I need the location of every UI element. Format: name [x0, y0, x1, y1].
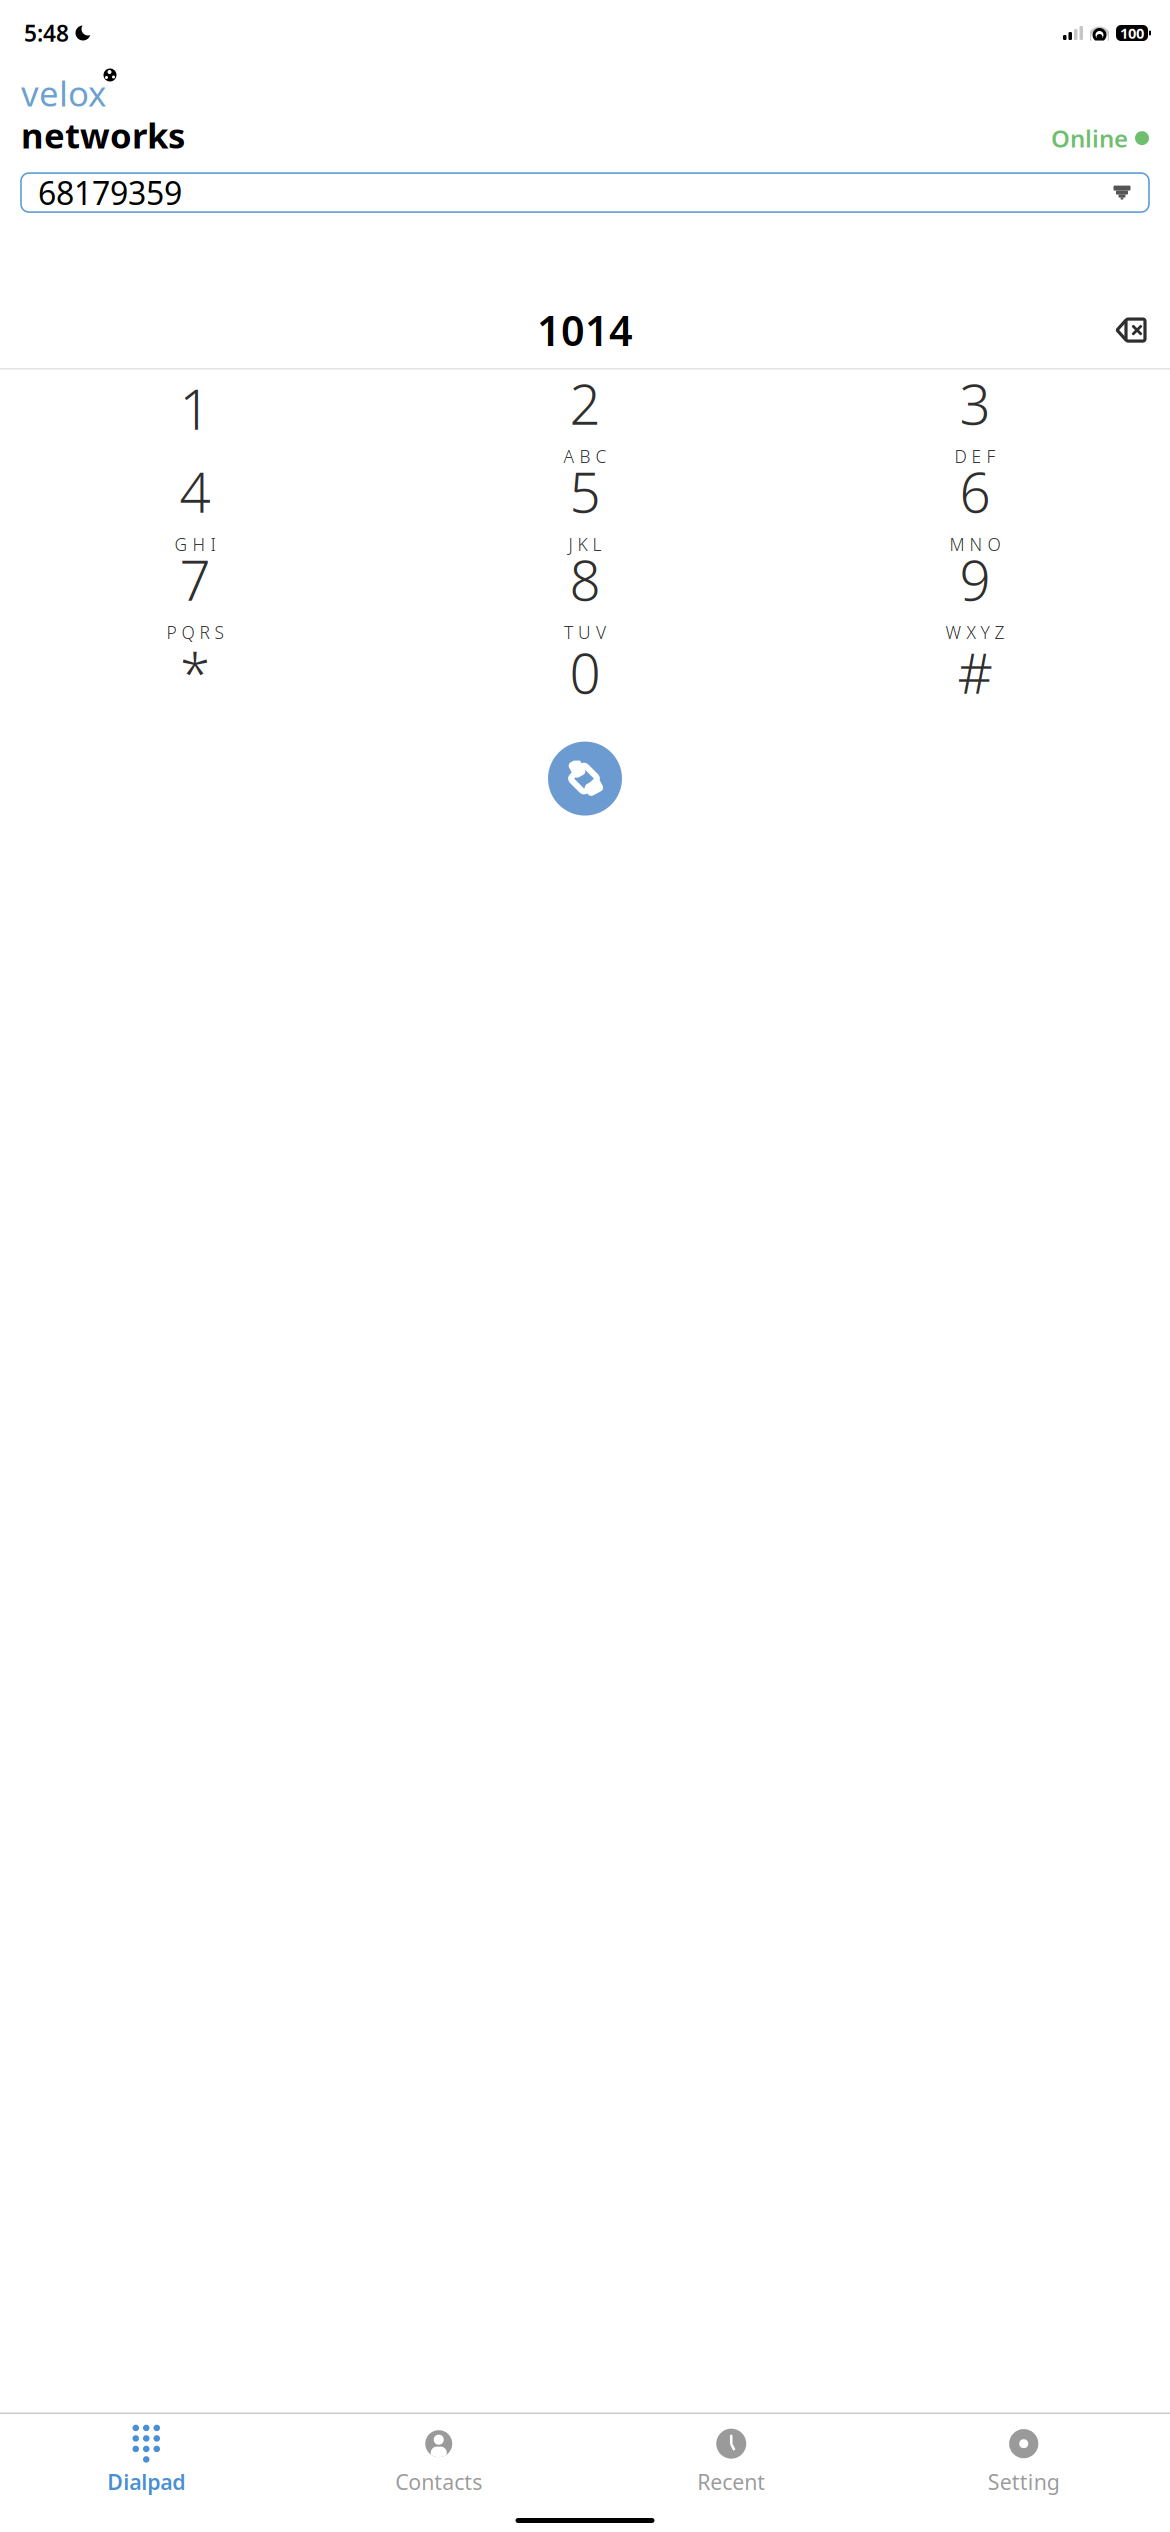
button[interactable]: 9	[780, 552, 1170, 640]
staticText: 68179359	[38, 171, 182, 214]
button[interactable]: 4	[0, 464, 390, 552]
button[interactable]: Setting	[877, 2425, 1170, 2498]
staticText: W X Y Z	[945, 621, 1004, 644]
button[interactable]: 68179359	[21, 173, 1149, 212]
staticText: Dialpad	[107, 2468, 185, 2496]
staticText: G H I	[174, 533, 215, 556]
button[interactable]: 5	[390, 464, 780, 552]
staticText: P Q R S	[166, 621, 223, 644]
button[interactable]: 7	[0, 552, 390, 640]
button[interactable]: #	[780, 640, 1170, 728]
staticText: 4	[179, 455, 210, 528]
button[interactable]: 1	[0, 376, 390, 464]
button[interactable]: Call	[540, 734, 630, 824]
staticText: networks	[21, 112, 185, 158]
staticText: 100	[1120, 23, 1144, 43]
staticText: J K L	[568, 533, 601, 556]
staticText: 3	[959, 367, 990, 440]
staticText: 1014	[537, 303, 633, 357]
staticText: velox	[21, 70, 106, 116]
staticText: 9	[959, 543, 990, 616]
button[interactable]: *	[0, 640, 390, 728]
staticText: 2	[569, 367, 600, 440]
staticText: 7	[179, 543, 210, 616]
staticText: D E F	[954, 445, 995, 468]
staticText: #	[957, 636, 992, 709]
button[interactable]: Online	[1051, 118, 1149, 158]
staticText: 5:48	[24, 18, 69, 48]
button[interactable]: 0	[390, 640, 780, 728]
button[interactable]: 2	[390, 376, 780, 464]
staticText: 1	[179, 372, 210, 445]
button[interactable]: Contacts	[292, 2425, 585, 2498]
staticText: Contacts	[395, 2468, 482, 2496]
staticText: M N O	[949, 533, 1000, 556]
button[interactable]: 8	[390, 552, 780, 640]
staticText: T U V	[564, 621, 606, 644]
button[interactable]: Recent	[585, 2425, 877, 2498]
staticText: Recent	[697, 2468, 765, 2496]
staticText: A B C	[563, 445, 606, 468]
button[interactable]: 3	[780, 376, 1170, 464]
staticText: 8	[569, 543, 600, 616]
staticText: *	[180, 636, 210, 709]
button[interactable]: Dialpad	[0, 2425, 292, 2498]
staticText: 6	[959, 455, 990, 528]
staticText: Setting	[988, 2468, 1060, 2496]
staticText: 5	[569, 455, 600, 528]
staticText: 0	[569, 636, 600, 709]
staticText: Online	[1051, 122, 1128, 154]
button[interactable]: Delete	[1104, 307, 1158, 353]
button[interactable]: 6	[780, 464, 1170, 552]
